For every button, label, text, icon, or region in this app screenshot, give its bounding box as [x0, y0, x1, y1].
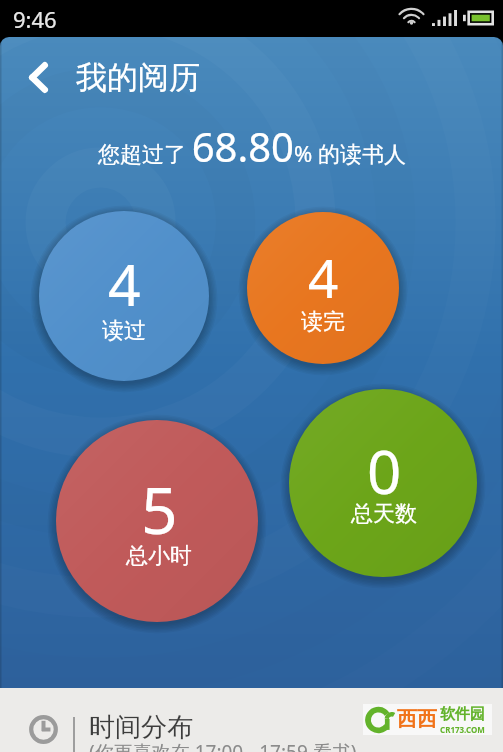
button[interactable]: Back: [14, 53, 62, 101]
button[interactable]: 4: [39, 211, 209, 381]
staticText: 4: [308, 241, 339, 313]
staticText: CR173.COM: [440, 724, 485, 735]
staticText: 我的阅历: [76, 58, 200, 97]
staticText: 5: [141, 466, 178, 553]
staticText: (你更喜欢在 17:00 - 17:59 看书): [89, 739, 357, 752]
staticText: 西西: [397, 707, 437, 732]
button[interactable]: 4: [247, 212, 399, 364]
staticText: 软件园: [440, 705, 485, 724]
staticText: 时间分布: [89, 711, 193, 744]
button[interactable]: 5: [56, 420, 258, 622]
staticText: 4: [108, 245, 141, 323]
button[interactable]: 0: [289, 389, 477, 577]
staticText: 您超过了 68.80% 的读书人: [98, 119, 406, 173]
staticText: 9:46: [13, 4, 57, 34]
staticText: 总小时: [126, 542, 192, 570]
staticText: 读完: [301, 308, 345, 336]
staticText: 总天数: [351, 500, 417, 528]
staticText: 0: [367, 430, 402, 512]
staticText: 读过: [102, 317, 146, 345]
